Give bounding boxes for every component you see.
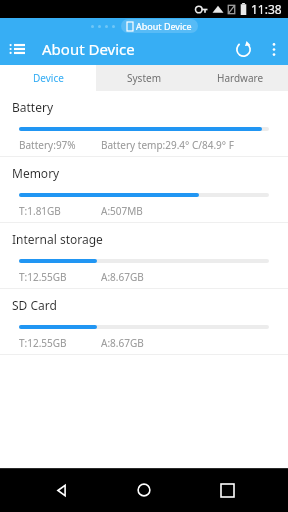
button[interactable]: More options <box>260 33 288 65</box>
staticText: Internal storage <box>12 231 103 247</box>
button[interactable]: System <box>96 65 192 91</box>
button[interactable]: Device <box>0 65 96 91</box>
staticText: Device <box>33 71 64 85</box>
staticText: T:12.55GB <box>19 336 67 350</box>
staticText: Memory <box>12 165 60 181</box>
staticText: T:1.81GB <box>19 204 61 218</box>
button[interactable]: Menu <box>0 33 34 65</box>
staticText: About Device <box>42 39 135 59</box>
button[interactable]: Internal storage <box>0 223 288 289</box>
button[interactable]: Memory <box>0 157 288 223</box>
staticText: Battery <box>12 99 54 115</box>
staticText: T:12.55GB <box>19 270 67 284</box>
button[interactable]: Hardware <box>192 65 288 91</box>
staticText: About Device <box>136 20 192 32</box>
staticText: 11:38 <box>251 1 282 17</box>
button[interactable]: Back <box>39 468 83 512</box>
button[interactable]: Home <box>122 468 166 512</box>
staticText: Battery:97% <box>19 138 76 152</box>
staticText: A:8.67GB <box>101 336 144 350</box>
staticText: Battery temp:29.4° C/84.9° F <box>101 138 234 152</box>
staticText: Hardware <box>217 71 264 85</box>
button[interactable]: Recent apps <box>205 468 249 512</box>
button[interactable]: SD Card <box>0 289 288 355</box>
staticText: SD Card <box>12 297 57 313</box>
staticText: A:507MB <box>101 204 143 218</box>
staticText: A:8.67GB <box>101 270 144 284</box>
button[interactable]: Refresh <box>226 33 260 65</box>
button[interactable]: Battery <box>0 91 288 157</box>
staticText: System <box>127 71 161 85</box>
